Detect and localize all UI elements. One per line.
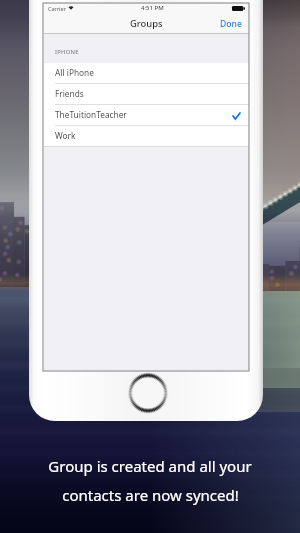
staticText: Friends (55, 88, 84, 99)
other: Selected (233, 113, 240, 119)
staticText: Done (220, 18, 242, 30)
button[interactable]: Home (126, 371, 170, 415)
staticText: IPHONE (55, 48, 79, 56)
button[interactable]: TheTuitionTeacher (44, 105, 249, 126)
staticText: TheTuitionTeacher (55, 109, 127, 120)
staticText: contacts are now synced! (62, 485, 239, 505)
staticText: All iPhone (55, 67, 94, 78)
staticText: Group is created and all your (48, 456, 252, 476)
staticText: Carrier (48, 5, 66, 12)
staticText: 4:51 PM (141, 4, 164, 12)
button[interactable]: Work (44, 126, 249, 147)
button[interactable]: Friends (44, 84, 249, 105)
button[interactable]: Done (213, 14, 249, 34)
button[interactable]: All iPhone (44, 63, 249, 84)
staticText: Groups (130, 17, 163, 30)
staticText: Work (55, 130, 76, 141)
